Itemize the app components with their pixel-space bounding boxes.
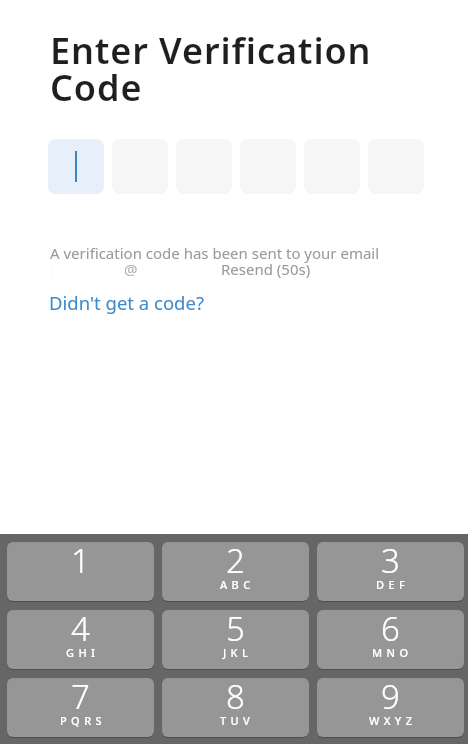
button[interactable]: 2 (162, 542, 309, 601)
staticText: g m a i l . c o m (137, 259, 242, 279)
button[interactable]: 5 (162, 610, 309, 669)
staticText: 8 (226, 678, 245, 719)
staticText: JKL (223, 645, 253, 660)
button[interactable]: 6 (317, 610, 464, 669)
staticText: DEF (376, 577, 410, 592)
staticText: WXYZ (369, 713, 417, 728)
staticText: 4 (71, 610, 90, 651)
staticText: j a c k s o n (50, 259, 127, 279)
staticText: 7 (71, 678, 90, 719)
button[interactable]: Resend (50s) (221, 259, 311, 279)
button[interactable]: 7 (7, 678, 154, 737)
staticText: 3 (381, 542, 400, 583)
staticText: 2 (226, 542, 245, 583)
button[interactable]: 9 (317, 678, 464, 737)
staticText: 9 (381, 678, 400, 719)
button[interactable]: 3 (317, 542, 464, 601)
button[interactable]: Code digit 1 (48, 139, 104, 194)
staticText: 5 (226, 610, 245, 651)
staticText: TUV (220, 713, 255, 728)
button[interactable]: 8 (162, 678, 309, 737)
staticText: 6 (381, 610, 400, 651)
staticText: MNO (372, 645, 413, 660)
staticText: 1 (71, 542, 90, 583)
staticText: GHI (66, 645, 100, 660)
staticText: Enter Verification Code (50, 26, 398, 112)
button[interactable]: 1 (7, 542, 154, 601)
staticText: PQRS (60, 713, 106, 728)
staticText: A verification code has been sent to you… (50, 243, 380, 263)
button[interactable]: Didn't get a code? (49, 290, 204, 315)
staticText: ABC (220, 577, 255, 592)
button[interactable]: 4 (7, 610, 154, 669)
staticText: @ (124, 259, 138, 279)
